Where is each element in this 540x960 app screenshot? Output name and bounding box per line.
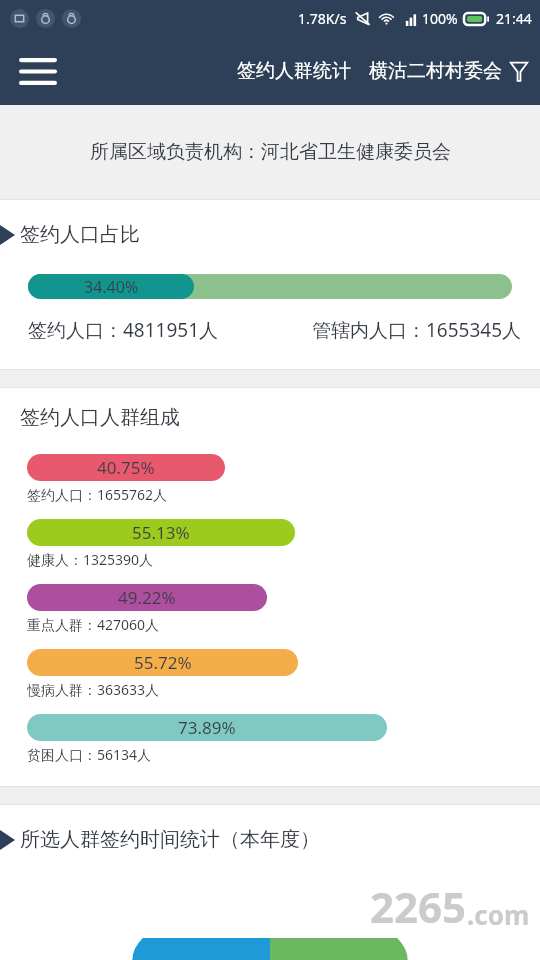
staticText: 21:44 — [496, 9, 532, 28]
button[interactable]: 签约人群统计 — [233, 51, 355, 91]
staticText: 管辖内人口：1655345人 — [312, 317, 522, 343]
staticText: 40.75% — [97, 456, 155, 479]
staticText: 2265 — [370, 878, 467, 935]
staticText: 签约人口占比 — [20, 222, 140, 247]
staticText: 73.89% — [178, 716, 236, 739]
staticText: 49.22% — [118, 586, 176, 609]
staticText: 34.40% — [84, 276, 139, 298]
staticText: 1.78K/s — [298, 9, 347, 28]
staticText: 55.13% — [132, 521, 190, 544]
staticText: 签约人口人群组成 — [20, 405, 180, 430]
staticText: 所属区域负责机构：河北省卫生健康委员会 — [90, 140, 451, 164]
staticText: .com — [467, 897, 530, 932]
staticText: 慢病人群：363633人 — [27, 680, 160, 699]
staticText: 所选人群签约时间统计（本年度） — [20, 827, 320, 852]
staticText: 签约人口：4811951人 — [28, 317, 219, 343]
button[interactable]: 横沽二村村委会 — [367, 51, 504, 91]
staticText: 健康人：1325390人 — [27, 550, 154, 569]
staticText: 贫困人口：56134人 — [27, 745, 152, 764]
staticText: 重点人群：427060人 — [27, 615, 160, 634]
button[interactable]: Open navigation menu — [12, 45, 64, 97]
staticText: 横沽二村村委会 — [369, 59, 502, 83]
staticText: 55.72% — [134, 651, 192, 674]
staticText: 签约人群统计 — [237, 59, 351, 83]
staticText: 100% — [422, 9, 458, 28]
button[interactable]: Filter — [504, 56, 534, 86]
staticText: 签约人口：1655762人 — [27, 485, 168, 504]
